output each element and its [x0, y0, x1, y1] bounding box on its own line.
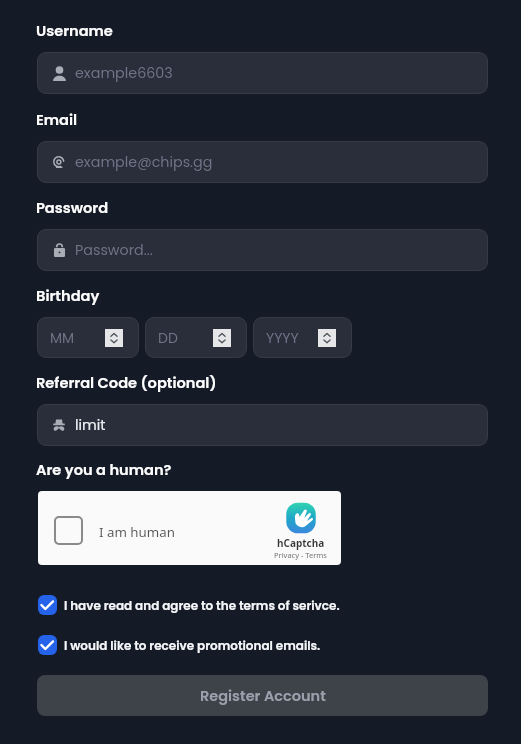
staticText: Register Account [200, 686, 326, 706]
button[interactable]: Change MM [105, 329, 123, 347]
staticText: I would like to receive promotional emai… [64, 637, 321, 654]
button[interactable]: I am human checkbox [38, 491, 341, 565]
staticText: I have read and agree to the terms of se… [64, 597, 340, 614]
button[interactable]: I would like to receive promotional emai… [38, 635, 321, 655]
button[interactable]: Register Account [37, 675, 488, 716]
button[interactable]: limit [37, 404, 488, 446]
staticText: Email [36, 110, 78, 130]
staticText: Birthday [36, 286, 100, 306]
button[interactable]: I have read and agree to the terms of se… [38, 595, 340, 615]
button[interactable]: MM [37, 317, 139, 358]
button[interactable]: example@chips.gg [37, 141, 488, 183]
button[interactable]: example6603 [37, 52, 488, 94]
staticText: hCaptcha [277, 536, 325, 550]
staticText: DD [158, 328, 178, 348]
staticText: Referral Code (optional) [36, 373, 217, 393]
staticText: MM [50, 328, 75, 348]
staticText: limit [75, 415, 106, 435]
staticText: YYYY [266, 328, 299, 348]
staticText: Username [36, 21, 113, 41]
staticText: Privacy - Terms [274, 550, 327, 560]
staticText: Password [36, 198, 109, 218]
button[interactable]: Password... [37, 229, 488, 271]
button[interactable]: Change DD [213, 329, 231, 347]
button[interactable]: I am human checkbox [54, 516, 83, 545]
button[interactable]: DD [145, 317, 247, 358]
staticText: Password... [75, 240, 153, 260]
button[interactable]: Change YYYY [318, 329, 336, 347]
staticText: example6603 [75, 63, 173, 83]
staticText: I am human [99, 523, 175, 541]
staticText: Are you a human? [36, 460, 172, 480]
staticText: example@chips.gg [75, 152, 213, 172]
button[interactable]: YYYY [253, 317, 352, 358]
